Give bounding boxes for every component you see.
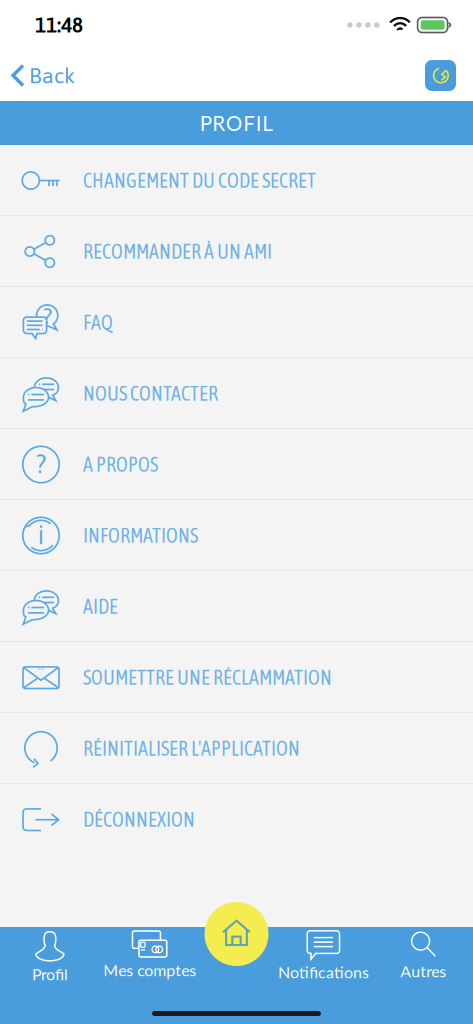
staticText: RECOMMANDER À UN AMI xyxy=(83,240,272,263)
button[interactable]: SOUMETTRE UNE RÉCLAMMATION xyxy=(0,642,473,713)
staticText: INFORMATIONS xyxy=(83,524,198,547)
staticText: P xyxy=(200,111,212,135)
staticText: Autres xyxy=(400,961,446,981)
staticText: O xyxy=(226,111,243,135)
staticText: ? xyxy=(36,449,45,478)
staticText: Mes comptes xyxy=(103,960,196,980)
staticText: R xyxy=(212,111,225,135)
button[interactable]: Back xyxy=(0,55,75,96)
staticText: Back xyxy=(29,63,75,88)
staticText: A PROPOS xyxy=(83,453,158,476)
staticText: ? xyxy=(43,303,51,329)
button[interactable]: App home xyxy=(425,60,473,91)
staticText: Notifications xyxy=(278,962,369,982)
button[interactable]: RÉINITIALISER L'APPLICATION xyxy=(0,713,473,784)
staticText: NOUS CONTACTER xyxy=(83,382,218,405)
staticText: AIDE xyxy=(83,595,118,618)
staticText: F xyxy=(243,111,255,135)
button[interactable]: NOUS CONTACTER xyxy=(0,358,473,429)
button[interactable]: AIDE xyxy=(0,571,473,642)
button[interactable]: RECOMMANDER À UN AMI xyxy=(0,216,473,287)
button[interactable]: Mes comptes xyxy=(100,927,200,993)
button[interactable]: ? xyxy=(0,287,473,358)
staticText: I xyxy=(256,111,262,135)
staticText: Profil xyxy=(32,964,68,984)
staticText: SOUMETTRE UNE RÉCLAMMATION xyxy=(83,666,332,689)
button[interactable]: Profil xyxy=(0,927,100,993)
staticText: RÉINITIALISER L'APPLICATION xyxy=(83,737,300,760)
staticText: DÉCONNEXION xyxy=(83,808,195,831)
button[interactable]: Autres xyxy=(373,927,473,993)
button[interactable]: DÉCONNEXION xyxy=(0,784,473,855)
button[interactable]: Notifications xyxy=(273,927,373,993)
button[interactable]: ? xyxy=(0,429,473,500)
button[interactable]: i xyxy=(0,500,473,571)
staticText: L xyxy=(262,111,273,135)
staticText: 11:48 xyxy=(35,13,83,37)
staticText: i xyxy=(38,520,44,549)
button[interactable]: CHANGEMENT DU CODE SECRET xyxy=(0,145,473,216)
staticText: FAQ xyxy=(83,311,113,334)
button[interactable]: Home xyxy=(204,902,268,966)
staticText: CHANGEMENT DU CODE SECRET xyxy=(83,169,316,192)
